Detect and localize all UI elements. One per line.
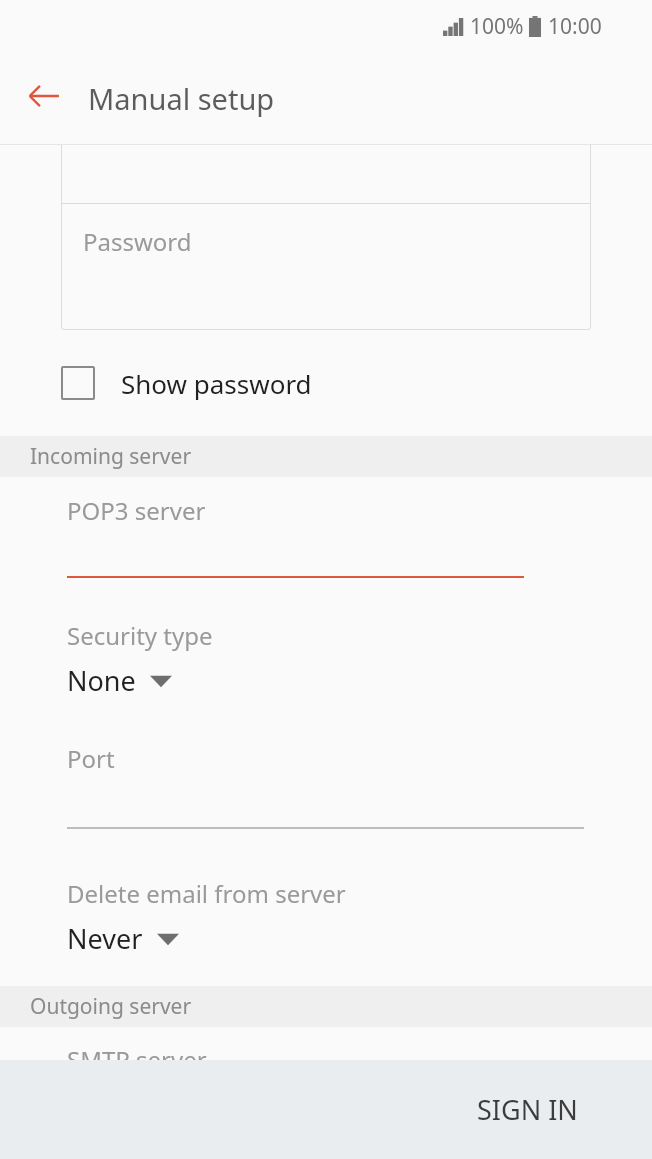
staticText: 10:00 bbox=[548, 12, 602, 41]
button[interactable]: Back bbox=[16, 68, 72, 124]
staticText: 10:00 bbox=[548, 12, 602, 41]
staticText: Delete email from server bbox=[67, 877, 346, 910]
staticText: 100% bbox=[470, 12, 524, 41]
staticText: Manual setup bbox=[88, 79, 275, 118]
staticText: Port bbox=[67, 742, 115, 775]
button[interactable]: Security type bbox=[0, 600, 652, 720]
button[interactable]: Port bbox=[0, 724, 652, 832]
button[interactable]: Delete email from server bbox=[0, 858, 652, 983]
button[interactable]: POP3 server bbox=[0, 477, 652, 580]
button[interactable]: Password bbox=[83, 225, 192, 258]
staticText: Show password bbox=[121, 366, 312, 401]
staticText: Incoming server bbox=[30, 442, 192, 471]
staticText: Outgoing server bbox=[30, 992, 192, 1021]
staticText: Manual setup bbox=[88, 79, 275, 118]
staticText: 100% bbox=[470, 12, 524, 41]
staticText: Never bbox=[67, 920, 143, 957]
staticText: POP3 server bbox=[67, 494, 206, 527]
staticText: SIGN IN bbox=[477, 1091, 578, 1128]
staticText: Security type bbox=[67, 619, 213, 652]
button[interactable]: Back bbox=[16, 68, 72, 124]
staticText: SMTP server bbox=[67, 1043, 207, 1076]
staticText: None bbox=[67, 662, 136, 699]
button[interactable]: Show password bbox=[0, 355, 652, 411]
button[interactable]: SIGN IN bbox=[457, 1077, 598, 1142]
